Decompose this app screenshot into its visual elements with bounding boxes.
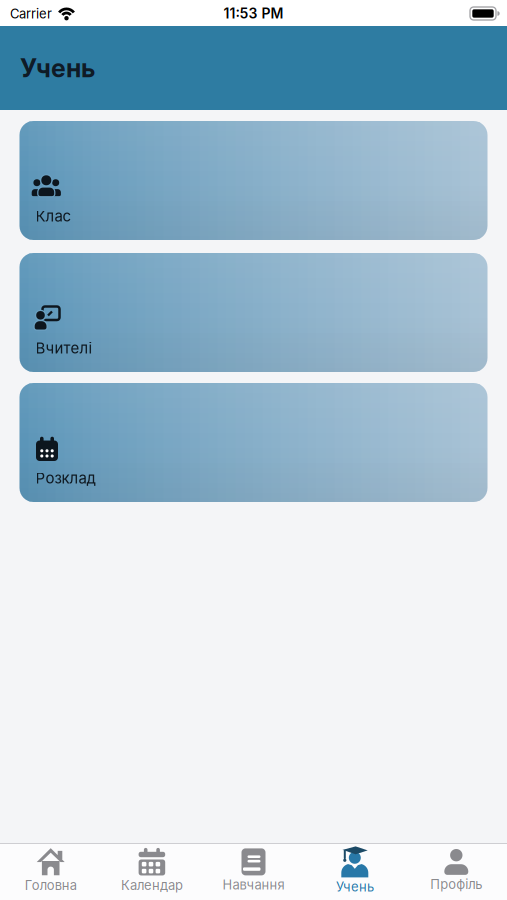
button[interactable]: Головна bbox=[0, 845, 101, 899]
staticText: 11:53 PM bbox=[223, 5, 283, 22]
staticText: Профіль bbox=[430, 876, 482, 892]
button[interactable]: Учень bbox=[304, 845, 406, 899]
staticText: Клас bbox=[35, 207, 71, 225]
button[interactable]: Календар bbox=[101, 845, 203, 899]
button[interactable]: Вчителі bbox=[19, 253, 487, 372]
staticText: Учень bbox=[20, 53, 95, 83]
button[interactable]: Навчання bbox=[203, 845, 304, 899]
staticText: Розклад bbox=[35, 469, 95, 487]
staticText: Учень bbox=[336, 879, 374, 895]
staticText: Календар bbox=[121, 877, 183, 893]
button[interactable]: Профіль bbox=[406, 845, 507, 899]
staticText: Вчителі bbox=[35, 339, 92, 357]
button[interactable]: Розклад bbox=[19, 383, 487, 502]
staticText: Головна bbox=[25, 877, 77, 893]
staticText: Навчання bbox=[222, 877, 284, 893]
button[interactable]: Клас bbox=[19, 121, 487, 240]
staticText: Carrier bbox=[10, 6, 52, 22]
